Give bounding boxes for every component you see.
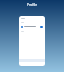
button[interactable]: Profile	[27, 3, 38, 7]
button[interactable]: Toggle notifications	[19, 25, 45, 28]
staticText: Profile	[27, 3, 38, 7]
other: Toggle notifications	[40, 26, 43, 28]
